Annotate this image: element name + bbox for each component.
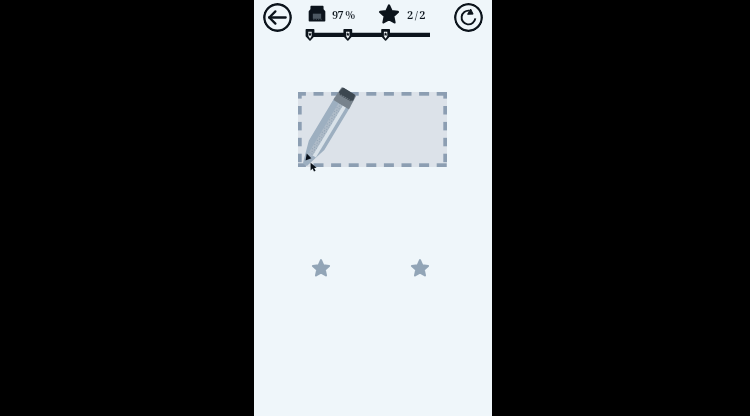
staticText: 97 %	[332, 7, 355, 22]
staticText: 2 / 2	[407, 7, 425, 22]
button[interactable]: Back	[263, 3, 292, 32]
button[interactable]: Restart	[454, 3, 483, 32]
